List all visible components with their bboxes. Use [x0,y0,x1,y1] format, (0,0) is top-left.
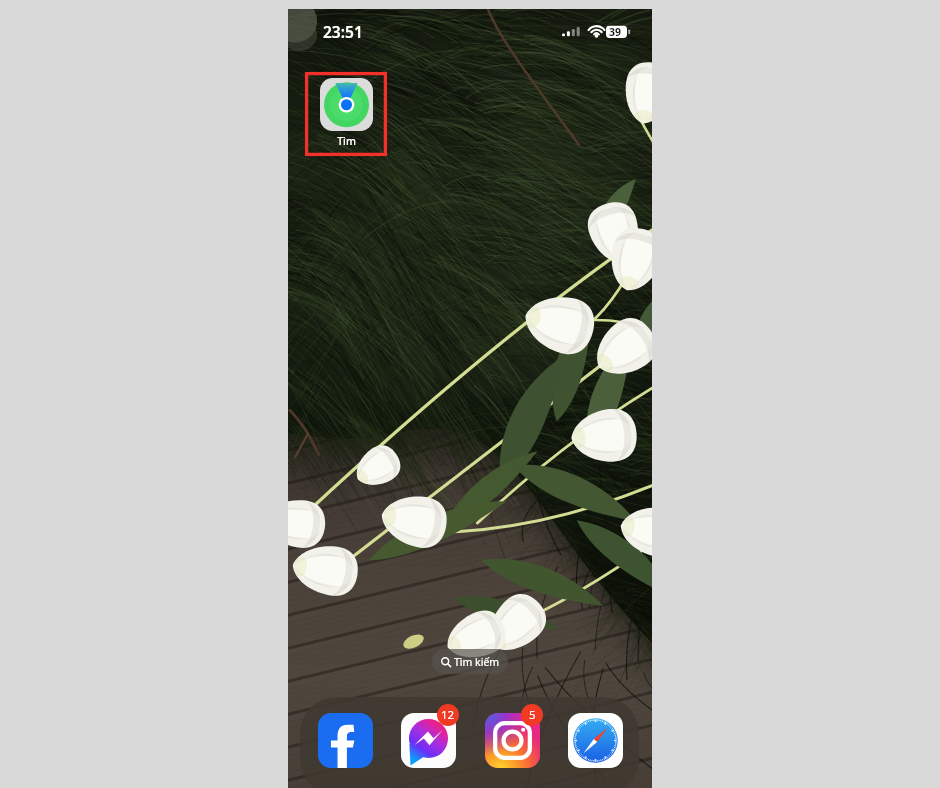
button[interactable]: Facebook [315,704,386,771]
staticText: Tìm [337,134,356,148]
button[interactable]: Instagram [482,704,553,771]
staticText: 39 [609,25,622,39]
button[interactable]: Safari [565,704,636,771]
button[interactable]: Tìm [305,78,387,156]
staticText: Tìm kiếm [454,655,499,669]
staticText: 12 [441,707,455,723]
staticText: 23:51 [323,21,363,42]
button[interactable]: Messenger [398,704,469,771]
button[interactable]: Tìm kiếm [432,649,508,674]
staticText: 5 [529,707,536,723]
